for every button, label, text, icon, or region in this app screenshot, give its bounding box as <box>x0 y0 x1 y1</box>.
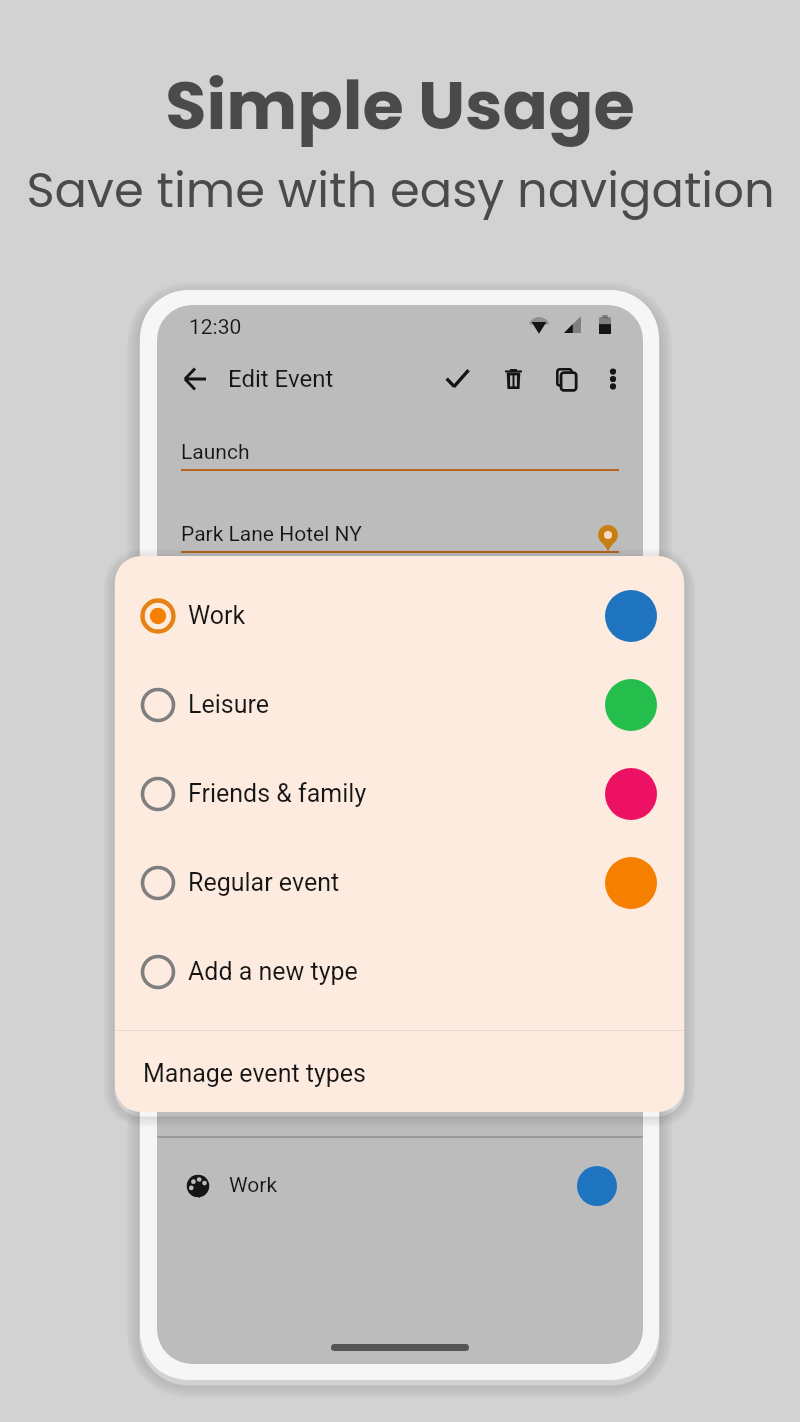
button[interactable]: More options <box>594 360 632 398</box>
button[interactable]: Add a new type <box>115 927 684 1016</box>
staticText: Leisure <box>188 690 269 719</box>
staticText: Launch <box>181 440 250 465</box>
button[interactable]: Manage event types <box>115 1031 684 1111</box>
staticText: Friends & family <box>188 779 367 808</box>
button[interactable]: Friends & family <box>115 749 684 838</box>
staticText: 12:30 <box>189 315 242 340</box>
button[interactable]: Regular event <box>115 838 684 927</box>
button[interactable]: Work <box>115 571 684 660</box>
staticText: Manage event types <box>143 1059 367 1088</box>
button[interactable]: Save <box>435 357 479 401</box>
staticText: Work <box>188 601 246 630</box>
button[interactable]: Duplicate <box>544 357 588 401</box>
staticText: Save time with easy navigation <box>26 157 775 224</box>
button[interactable]: Back <box>173 357 217 401</box>
staticText: Edit Event <box>228 365 334 393</box>
staticText: Regular event <box>188 868 340 897</box>
button[interactable]: Delete <box>491 357 535 401</box>
button[interactable]: Work <box>157 1148 643 1223</box>
staticText: Work <box>229 1173 278 1198</box>
button[interactable]: Leisure <box>115 660 684 749</box>
staticText: Simple Usage <box>165 59 635 153</box>
other: Location <box>598 525 618 553</box>
staticText: Park Lane Hotel NY <box>181 522 362 547</box>
staticText: Add a new type <box>188 957 358 986</box>
